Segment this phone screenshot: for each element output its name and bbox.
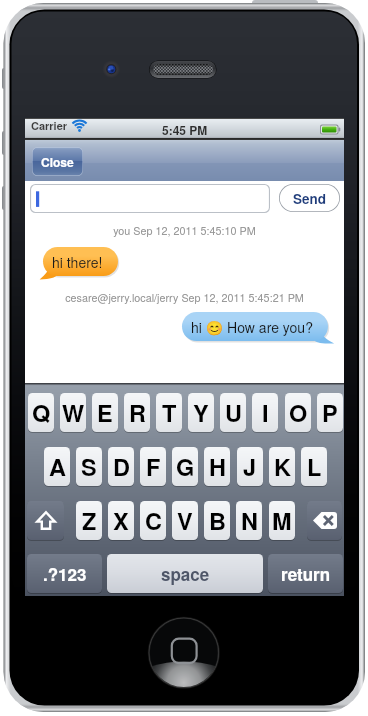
staticText: I bbox=[262, 396, 269, 430]
button[interactable]: A bbox=[44, 447, 70, 486]
button[interactable]: D bbox=[108, 447, 134, 486]
staticText: 5:45 PM bbox=[162, 121, 208, 138]
button[interactable]: S bbox=[76, 447, 102, 486]
button[interactable]: J bbox=[237, 447, 263, 486]
button[interactable]: M bbox=[269, 501, 295, 540]
button[interactable]: Shift bbox=[27, 501, 64, 540]
staticText: J bbox=[243, 450, 257, 484]
button[interactable]: Send bbox=[279, 184, 340, 212]
staticText: Carrier bbox=[31, 118, 68, 134]
staticText: Send bbox=[293, 189, 327, 208]
button[interactable]: I bbox=[252, 393, 278, 432]
staticText: Close bbox=[41, 153, 74, 170]
button[interactable]: X bbox=[108, 501, 134, 540]
staticText: V bbox=[177, 504, 193, 538]
button[interactable]: .?123 bbox=[27, 554, 102, 593]
button[interactable]: K bbox=[269, 447, 295, 486]
button[interactable] bbox=[30, 184, 270, 213]
staticText: W bbox=[62, 396, 85, 430]
staticText: hi 😊 How are you? bbox=[191, 317, 313, 337]
button[interactable]: P bbox=[317, 393, 343, 432]
staticText: hi there! bbox=[52, 252, 103, 272]
staticText: S bbox=[81, 450, 97, 484]
button[interactable]: C bbox=[140, 501, 166, 540]
button[interactable]: Backspace bbox=[307, 501, 342, 540]
staticText: P bbox=[322, 396, 338, 430]
staticText: B bbox=[209, 504, 226, 538]
staticText: U bbox=[225, 396, 242, 430]
button[interactable]: R bbox=[124, 393, 150, 432]
button[interactable]: O bbox=[285, 393, 311, 432]
staticText: .?123 bbox=[43, 562, 87, 586]
staticText: Z bbox=[82, 504, 97, 538]
button[interactable]: Close bbox=[32, 147, 83, 176]
staticText: N bbox=[241, 504, 258, 538]
staticText: O bbox=[289, 396, 308, 430]
staticText: D bbox=[113, 450, 130, 484]
staticText: R bbox=[129, 396, 146, 430]
button[interactable]: F bbox=[140, 447, 166, 486]
button[interactable]: Y bbox=[188, 393, 214, 432]
staticText: return bbox=[281, 562, 331, 586]
button[interactable]: N bbox=[236, 501, 262, 540]
button[interactable]: T bbox=[156, 393, 182, 432]
button[interactable]: E bbox=[92, 393, 118, 432]
staticText: you Sep 12, 2011 5:45:10 PM bbox=[25, 223, 344, 238]
button[interactable]: G bbox=[172, 447, 198, 486]
button[interactable]: L bbox=[301, 447, 327, 486]
button[interactable]: H bbox=[204, 447, 230, 486]
staticText: space bbox=[161, 562, 210, 586]
staticText: X bbox=[113, 504, 129, 538]
button[interactable]: B bbox=[204, 501, 230, 540]
button[interactable]: V bbox=[172, 501, 198, 540]
staticText: H bbox=[209, 450, 226, 484]
staticText: T bbox=[162, 396, 177, 430]
staticText: Q bbox=[32, 396, 51, 430]
staticText: K bbox=[274, 450, 291, 484]
button[interactable]: W bbox=[60, 393, 86, 432]
staticText: C bbox=[145, 504, 162, 538]
button[interactable]: space bbox=[107, 554, 263, 593]
button[interactable]: Q bbox=[28, 393, 54, 432]
staticText: L bbox=[307, 450, 322, 484]
staticText: M bbox=[272, 504, 292, 538]
staticText: F bbox=[146, 450, 161, 484]
button[interactable]: return bbox=[268, 554, 343, 593]
staticText: Y bbox=[193, 396, 209, 430]
button[interactable]: Z bbox=[76, 501, 102, 540]
staticText: A bbox=[49, 450, 66, 484]
staticText: G bbox=[176, 450, 195, 484]
staticText: E bbox=[97, 396, 113, 430]
staticText: cesare@jerry.local/jerry Sep 12, 2011 5:… bbox=[25, 290, 344, 305]
button[interactable]: U bbox=[220, 393, 246, 432]
